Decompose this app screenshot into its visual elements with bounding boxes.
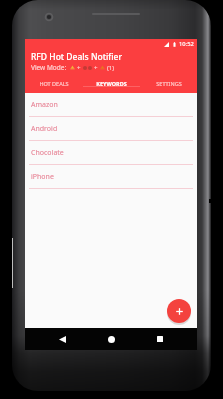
button[interactable]: Add keyword [167, 299, 191, 323]
staticText: iPhone [31, 172, 54, 182]
button[interactable]: iPhone [25, 165, 197, 189]
staticText: KEYWORDS [96, 80, 127, 87]
staticText: Chocolate [31, 148, 64, 158]
staticText: (1) [107, 64, 115, 72]
staticText: 10:52 [179, 40, 194, 48]
button[interactable]: Back [54, 331, 70, 347]
staticText: + [94, 64, 98, 72]
staticText: Android [31, 124, 58, 134]
staticText: View Mode: [31, 63, 67, 72]
button[interactable]: KEYWORDS [83, 80, 140, 87]
button[interactable]: Chocolate [25, 141, 197, 165]
button[interactable]: Android [25, 117, 197, 141]
button[interactable]: Home [103, 331, 119, 347]
staticText: RFD Hot Deals Notifier [31, 51, 123, 63]
staticText: + [77, 64, 81, 72]
button[interactable]: Amazon [25, 93, 197, 117]
button[interactable]: SETTINGS [140, 80, 197, 87]
staticText: Amazon [31, 100, 58, 110]
staticText: HOT DEALS [39, 80, 69, 87]
staticText: SETTINGS [156, 80, 182, 87]
button[interactable]: Recents [152, 331, 168, 347]
button[interactable]: HOT DEALS [25, 80, 83, 87]
